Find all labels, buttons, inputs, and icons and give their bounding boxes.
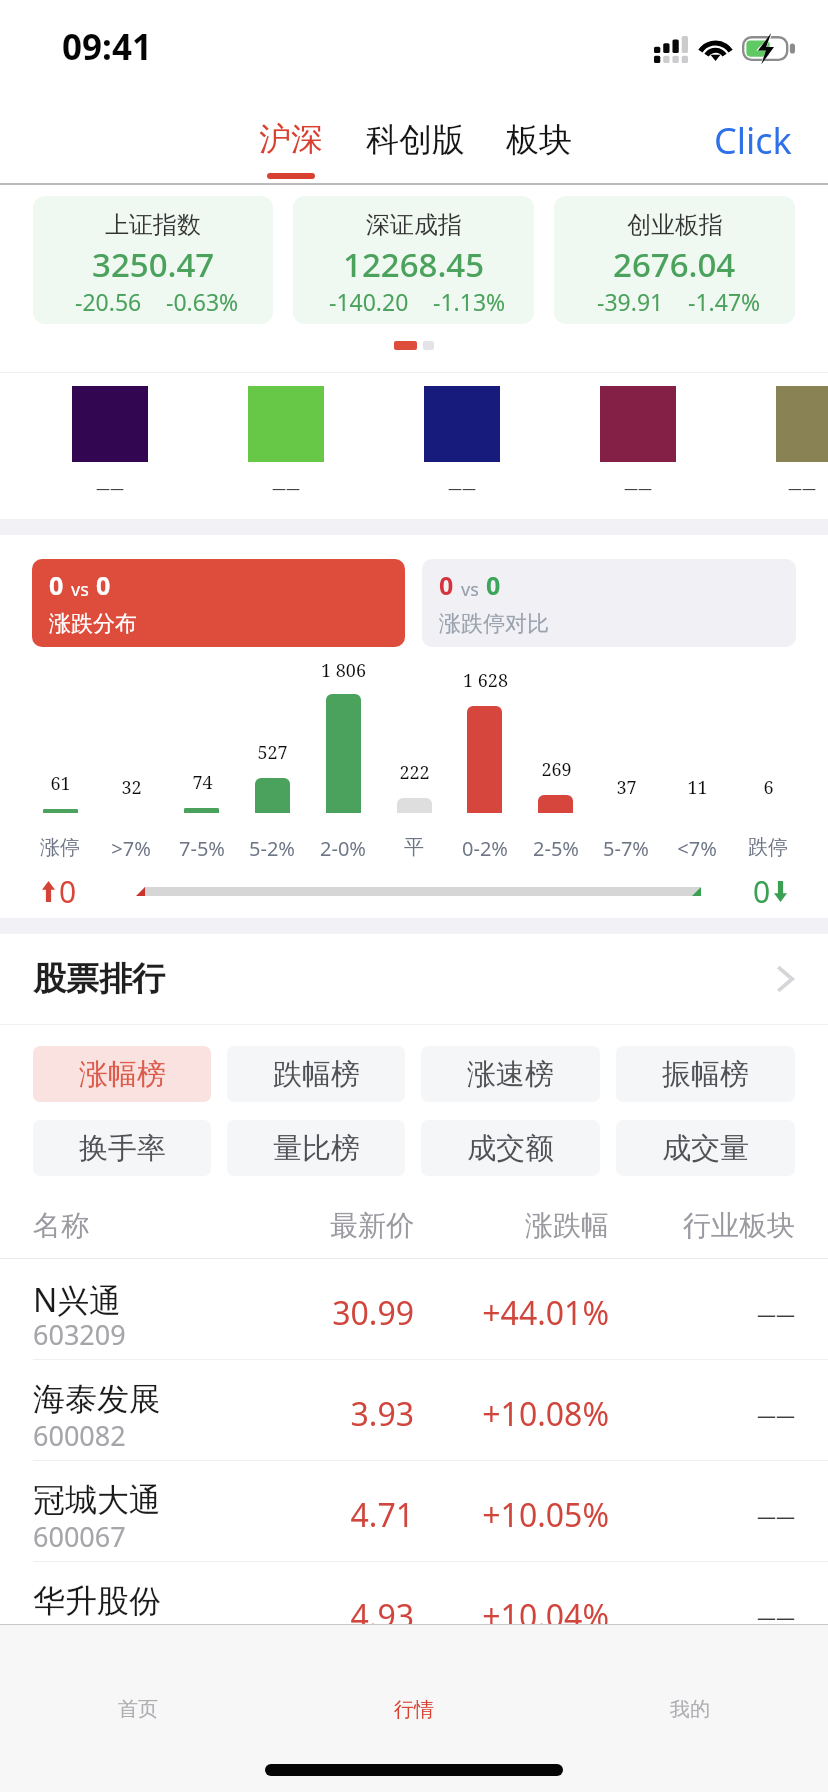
- other: More rankings: [775, 963, 795, 995]
- button[interactable]: 换手率: [33, 1120, 211, 1176]
- staticText: 0: [96, 568, 111, 602]
- staticText: -140.20: [329, 286, 409, 317]
- staticText: 华升股份: [33, 1581, 161, 1621]
- staticText: -39.91: [597, 286, 664, 317]
- button[interactable]: 海泰发展: [0, 1360, 828, 1460]
- staticText: 创业板指: [627, 210, 723, 240]
- staticText: 0: [439, 568, 454, 602]
- staticText: 3250.47: [92, 242, 215, 287]
- staticText: ——: [609, 1504, 795, 1530]
- button[interactable]: 涨速榜: [421, 1046, 600, 1102]
- button[interactable]: 成交额: [421, 1120, 600, 1176]
- staticText: 600082: [33, 1417, 126, 1454]
- button[interactable]: 股票排行: [0, 934, 828, 1024]
- staticText: 0-2%: [462, 835, 508, 862]
- button[interactable]: 科创版: [360, 119, 471, 161]
- button[interactable]: Click: [708, 116, 798, 165]
- staticText: 成交量: [662, 1130, 749, 1167]
- staticText: 深证成指: [366, 210, 462, 240]
- button[interactable]: 0: [422, 559, 796, 647]
- staticText: 4.71: [245, 1493, 414, 1537]
- button[interactable]: 涨幅榜: [33, 1046, 211, 1102]
- staticText: +44.01%: [414, 1291, 609, 1335]
- staticText: -1.47%: [688, 286, 761, 317]
- button[interactable]: 行情: [276, 1690, 552, 1728]
- button[interactable]: 冠城大通: [0, 1461, 828, 1561]
- staticText: 600156: [33, 1619, 126, 1656]
- staticText: 3.93: [245, 1392, 414, 1436]
- button[interactable]: 跌幅榜: [227, 1046, 405, 1102]
- button[interactable]: N兴通: [0, 1259, 828, 1359]
- staticText: ——: [609, 1403, 795, 1429]
- staticText: 最新价: [245, 1208, 414, 1243]
- staticText: 涨跌停对比: [439, 610, 549, 638]
- staticText: 沪深: [259, 119, 323, 159]
- staticText: ——: [600, 479, 676, 498]
- staticText: 5-2%: [249, 835, 295, 862]
- staticText: 上证指数: [105, 210, 201, 240]
- staticText: 科创版: [366, 119, 465, 161]
- staticText: -1.13%: [433, 286, 506, 317]
- staticText: ——: [72, 479, 148, 498]
- staticText: 09:41: [62, 23, 152, 71]
- staticText: ——: [609, 1302, 795, 1328]
- staticText: +10.08%: [414, 1392, 609, 1436]
- staticText: 涨跌分布: [49, 610, 137, 638]
- button[interactable]: 我的: [552, 1690, 828, 1728]
- staticText: 30.99: [245, 1291, 414, 1335]
- staticText: 涨跌幅: [414, 1208, 609, 1243]
- button[interactable]: 0: [32, 559, 405, 647]
- button[interactable]: 首页: [0, 1690, 276, 1728]
- staticText: 7-5%: [179, 835, 225, 862]
- staticText: <7%: [677, 835, 717, 862]
- staticText: 0: [59, 871, 77, 912]
- staticText: -0.63%: [166, 286, 239, 317]
- staticText: >7%: [111, 835, 151, 862]
- staticText: 1 628: [463, 668, 508, 693]
- button[interactable]: 沪深: [253, 119, 329, 179]
- staticText: ——: [776, 479, 828, 498]
- staticText: 37: [616, 775, 637, 800]
- staticText: 行情: [394, 1697, 434, 1722]
- button[interactable]: 振幅榜: [616, 1046, 795, 1102]
- staticText: 我的: [670, 1697, 710, 1722]
- staticText: 0: [49, 568, 64, 602]
- staticText: 2-5%: [533, 835, 579, 862]
- button[interactable]: 创业板指: [554, 196, 795, 324]
- staticText: 32: [121, 775, 142, 800]
- staticText: 行业板块: [609, 1208, 795, 1243]
- staticText: 0: [486, 568, 501, 602]
- button[interactable]: 成交量: [616, 1120, 795, 1176]
- staticText: -20.56: [75, 286, 142, 317]
- button[interactable]: 深证成指: [293, 196, 534, 324]
- staticText: 5-7%: [603, 835, 649, 862]
- staticText: ——: [424, 479, 500, 498]
- staticText: 2676.04: [613, 242, 736, 287]
- button[interactable]: 华升股份: [0, 1562, 828, 1662]
- staticText: 平: [404, 835, 424, 860]
- staticText: 跌幅榜: [273, 1056, 360, 1093]
- staticText: 跌停: [748, 835, 788, 860]
- staticText: 12268.45: [343, 242, 485, 287]
- staticText: 换手率: [79, 1130, 166, 1167]
- staticText: 0: [753, 871, 771, 912]
- staticText: Click: [714, 116, 792, 165]
- staticText: N兴通: [33, 1278, 122, 1322]
- button[interactable]: 上证指数: [33, 196, 273, 324]
- staticText: 板块: [506, 119, 572, 161]
- staticText: 股票排行: [33, 958, 165, 1000]
- staticText: 269: [541, 757, 572, 782]
- staticText: 成交额: [467, 1130, 554, 1167]
- staticText: 527: [257, 740, 288, 765]
- staticText: 6: [763, 775, 774, 800]
- staticText: 冠城大通: [33, 1480, 161, 1520]
- staticText: 涨停: [40, 835, 80, 860]
- staticText: 海泰发展: [33, 1379, 161, 1419]
- button[interactable]: 量比榜: [227, 1120, 405, 1176]
- button[interactable]: 板块: [500, 119, 578, 161]
